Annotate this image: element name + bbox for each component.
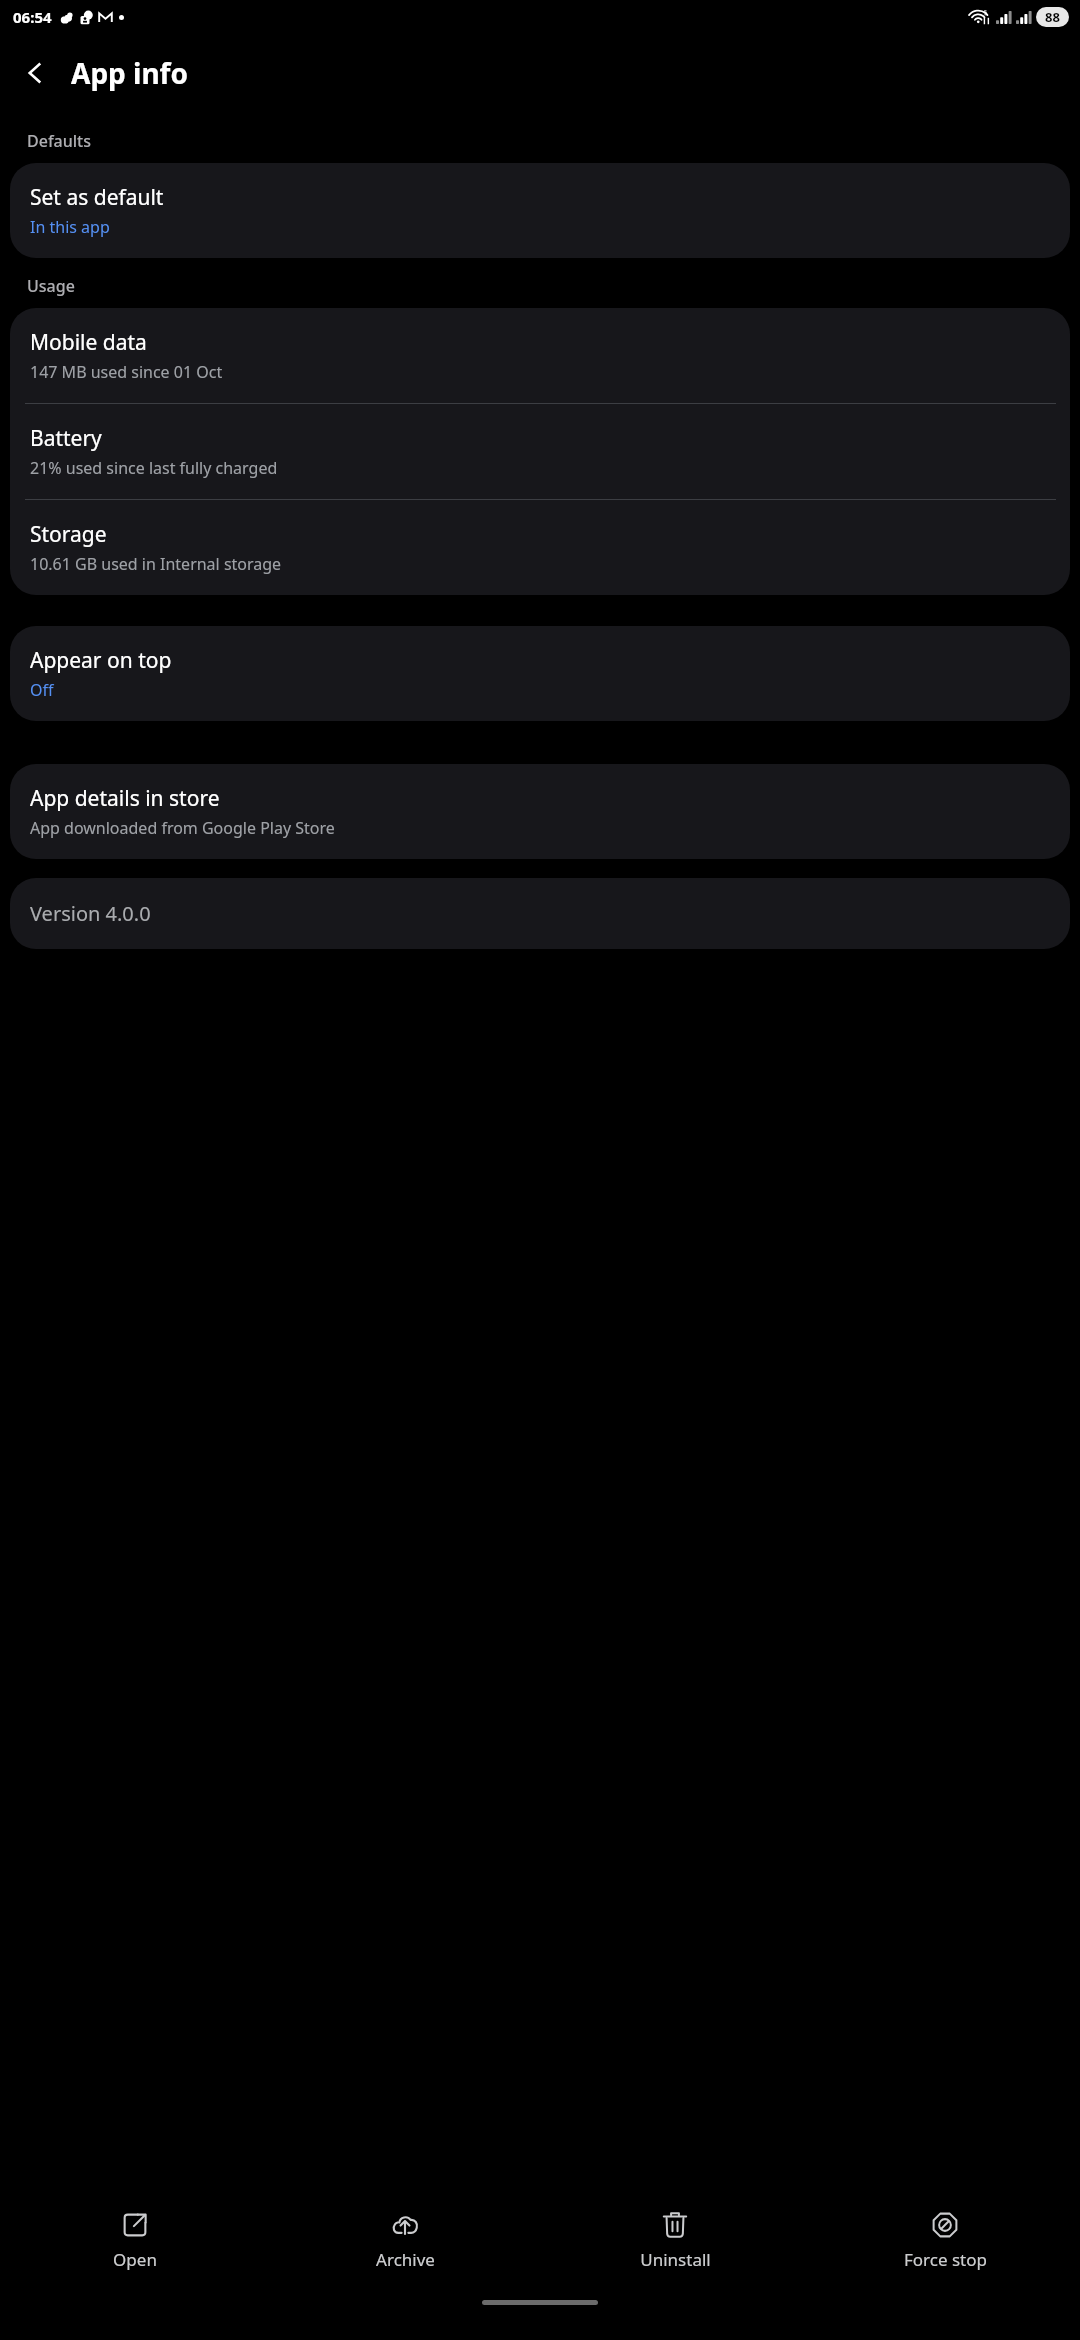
button[interactable]: Back [8,46,62,100]
staticText: Set as default [30,183,164,212]
staticText: Battery [30,424,102,453]
staticText: In this app [30,216,110,238]
button[interactable]: Uninstall [540,2205,810,2277]
staticText: 147 MB used since 01 Oct [30,361,223,383]
staticText: 88 [1045,8,1060,26]
button[interactable]: Force stop [810,2205,1080,2277]
staticText: Usage [27,275,75,297]
staticText: Force stop [904,2248,987,2271]
staticText: Version 4.0.0 [30,900,151,927]
button[interactable]: App details in store [10,764,1070,859]
staticText: Defaults [27,130,92,152]
button[interactable]: Version 4.0.0 [10,878,1070,949]
staticText: App details in store [30,784,220,813]
staticText: 10.61 GB used in Internal storage [30,553,282,575]
staticText: Open [113,2248,157,2271]
staticText: Archive [376,2248,435,2271]
button[interactable]: Battery [10,404,1070,499]
staticText: 06:54 [13,7,52,27]
staticText: Off [30,679,54,701]
button[interactable]: Open [0,2205,270,2277]
staticText: App info [71,54,188,92]
button[interactable]: Set as default [10,163,1070,258]
button[interactable]: Mobile data [10,308,1070,403]
staticText: Appear on top [30,646,172,675]
staticText: Storage [30,520,107,549]
staticText: Mobile data [30,328,147,357]
staticText: Uninstall [640,2248,711,2271]
button[interactable]: Storage [10,500,1070,595]
staticText: 21% used since last fully charged [30,457,278,479]
button[interactable]: Appear on top [10,626,1070,721]
staticText: App downloaded from Google Play Store [30,817,335,839]
button[interactable]: Archive [270,2205,540,2277]
